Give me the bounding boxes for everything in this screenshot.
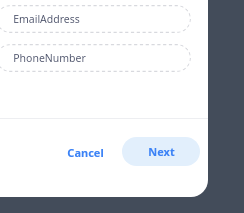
button[interactable]: EmailAddress xyxy=(0,5,191,33)
button[interactable]: Cancel xyxy=(58,140,112,164)
staticText: Next xyxy=(148,144,175,159)
staticText: PhoneNumber xyxy=(13,51,86,65)
staticText: Cancel xyxy=(67,145,104,160)
button[interactable]: Next xyxy=(122,137,200,166)
button[interactable]: PhoneNumber xyxy=(0,44,191,72)
staticText: EmailAddress xyxy=(13,12,80,26)
